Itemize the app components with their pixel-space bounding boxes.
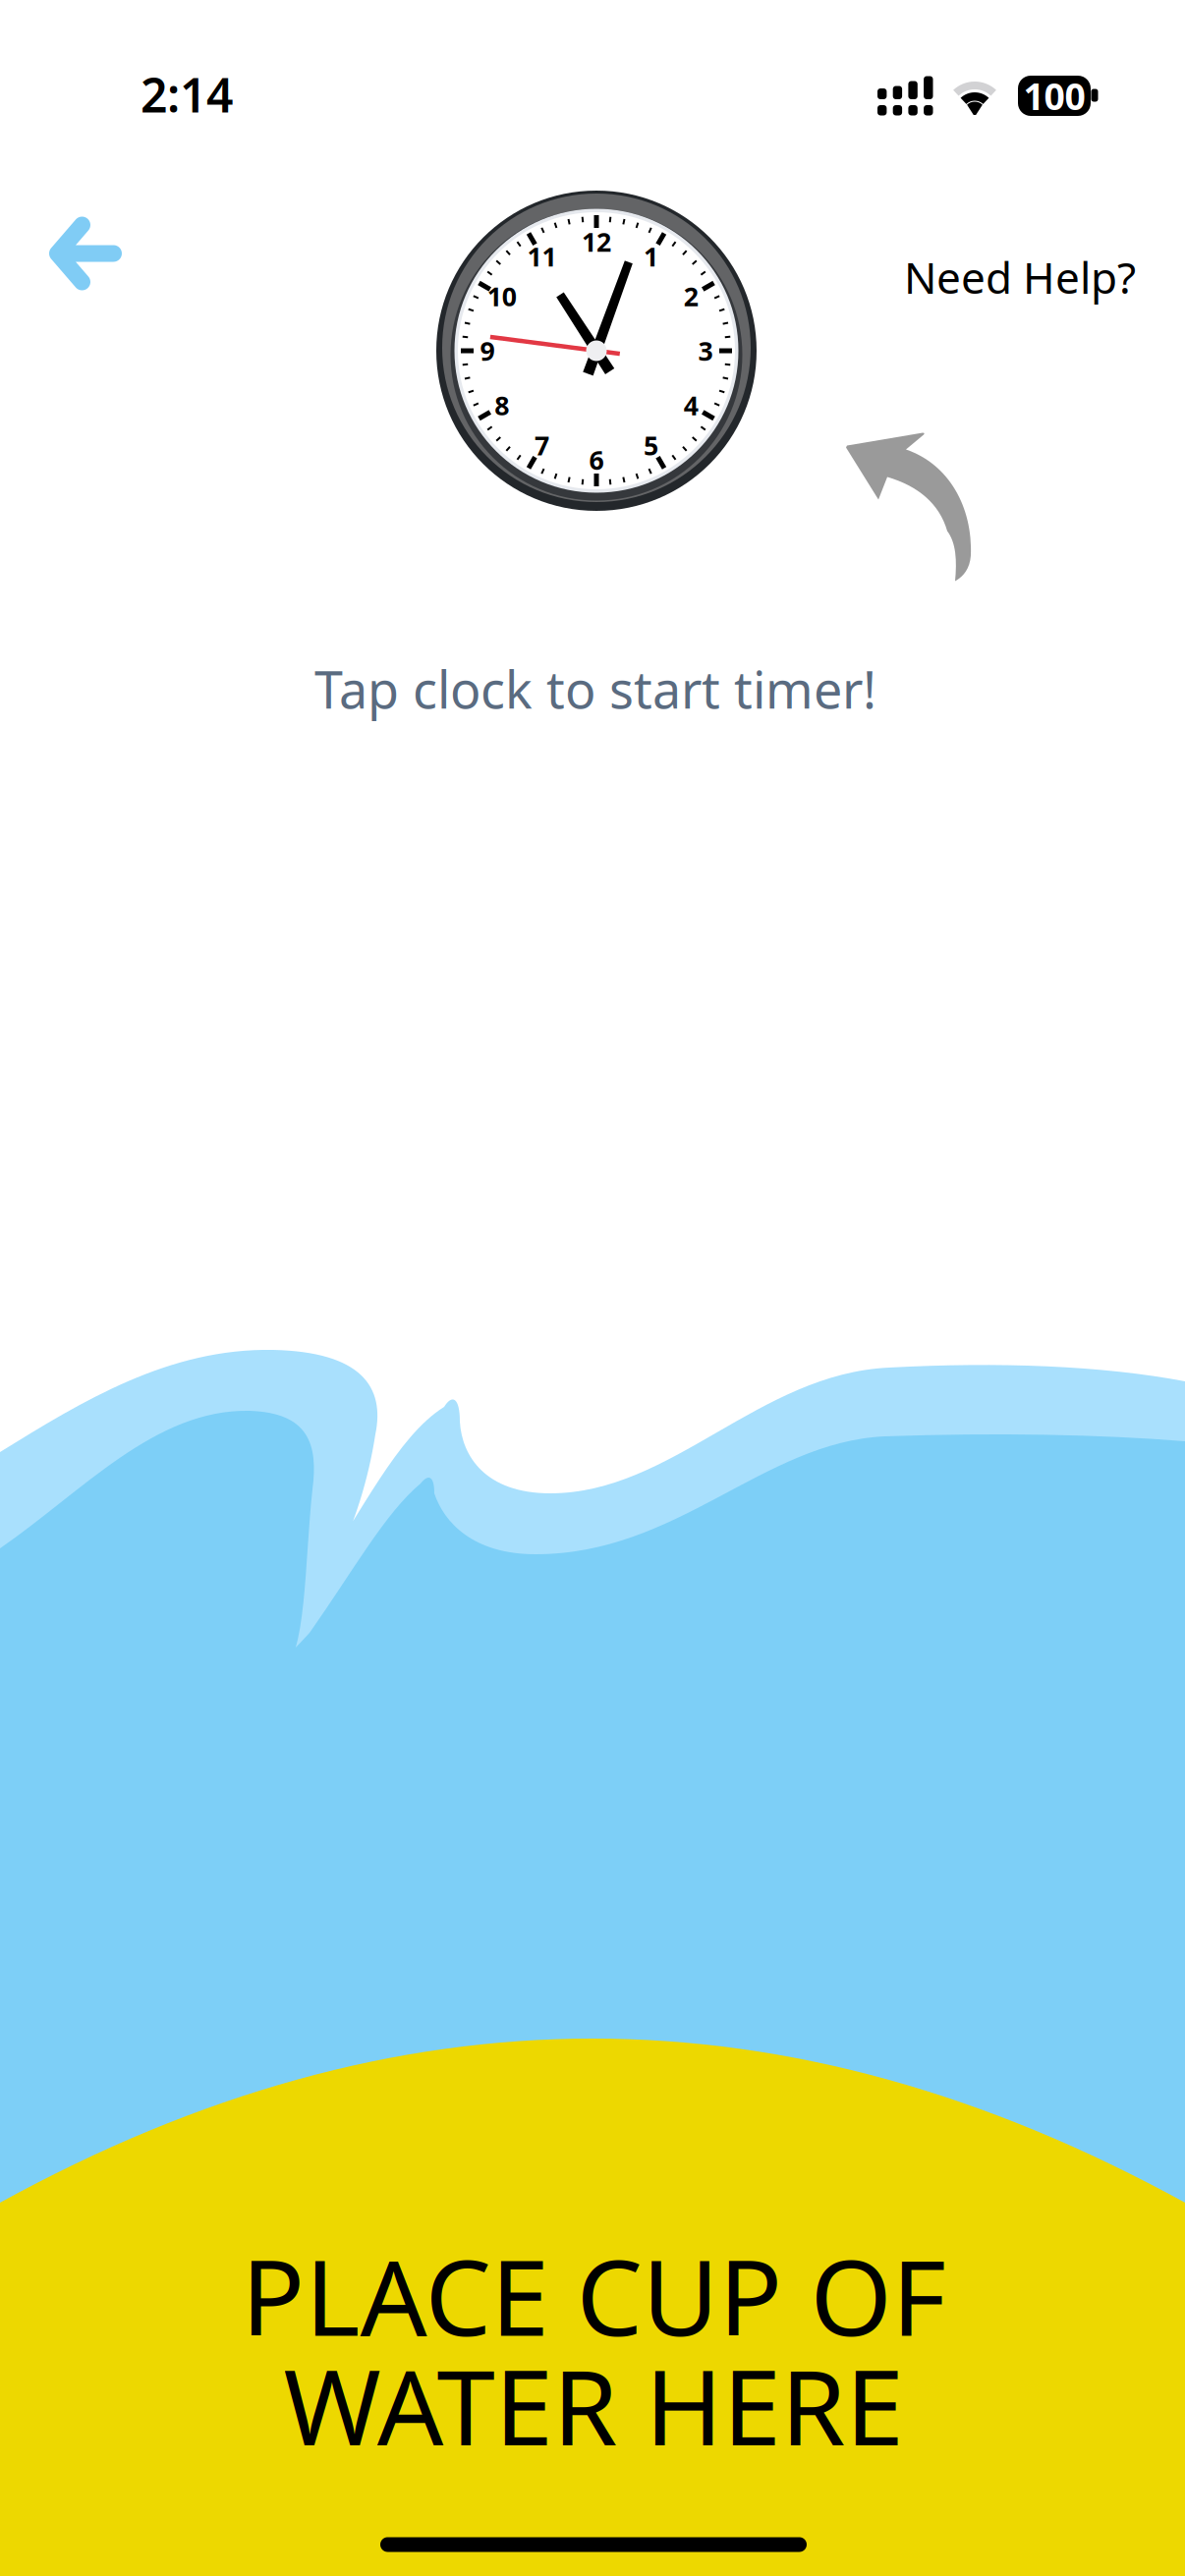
staticText: 3	[698, 333, 713, 368]
staticText: 4	[683, 388, 698, 423]
staticText: 8	[495, 388, 509, 423]
button[interactable]: Need Help?	[890, 235, 1150, 319]
staticText: 2:14	[141, 63, 233, 126]
staticText: 1	[644, 239, 658, 274]
staticText: 9	[480, 333, 495, 368]
staticText: Need Help?	[904, 248, 1136, 306]
staticText: Tap clock to start timer!	[314, 655, 876, 723]
staticText: 10	[487, 279, 517, 314]
button[interactable]: Start timer	[436, 191, 757, 511]
staticText: 12	[582, 224, 611, 259]
staticText: PLACE CUP OF	[241, 2226, 946, 2365]
staticText: 2	[683, 279, 698, 314]
button[interactable]: Back	[28, 195, 143, 312]
staticText: 5	[644, 428, 658, 463]
staticText: WATER HERE	[283, 2335, 903, 2474]
staticText: 6	[589, 442, 604, 477]
staticText: 100	[1023, 71, 1085, 120]
staticText: 11	[527, 239, 557, 274]
staticText: 7	[535, 428, 549, 463]
